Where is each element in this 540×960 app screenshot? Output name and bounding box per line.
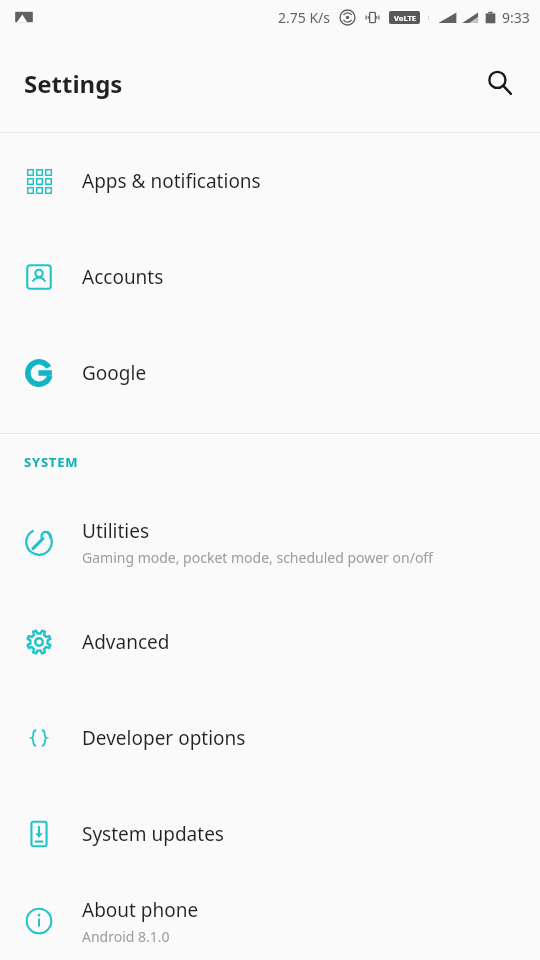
button[interactable]: Utilities [0, 490, 540, 594]
staticText: Utilities [82, 518, 150, 544]
button[interactable]: About phone [0, 882, 540, 960]
staticText: 9:33 [502, 8, 530, 27]
button[interactable]: Advanced [0, 594, 540, 690]
staticText: Settings [24, 67, 123, 100]
staticText: Apps & notifications [82, 168, 261, 194]
staticText: VoLTE [394, 13, 416, 23]
button[interactable]: Developer options [0, 690, 540, 786]
staticText: Google [82, 360, 147, 386]
staticText: Accounts [82, 264, 164, 290]
button[interactable]: Apps & notifications [0, 133, 540, 229]
staticText: Advanced [82, 629, 170, 655]
button[interactable]: Accounts [0, 229, 540, 325]
button[interactable]: System updates [0, 786, 540, 882]
staticText: 2.75 K/s [278, 8, 330, 27]
staticText: Gaming mode, pocket mode, scheduled powe… [82, 548, 433, 567]
staticText: System updates [82, 821, 224, 847]
staticText: Android 8.1.0 [82, 927, 170, 946]
staticText: About phone [82, 897, 199, 923]
button[interactable]: Search [474, 57, 526, 109]
staticText: Developer options [82, 725, 246, 751]
button[interactable]: Google [0, 325, 540, 421]
staticText: SYSTEM [24, 453, 79, 471]
